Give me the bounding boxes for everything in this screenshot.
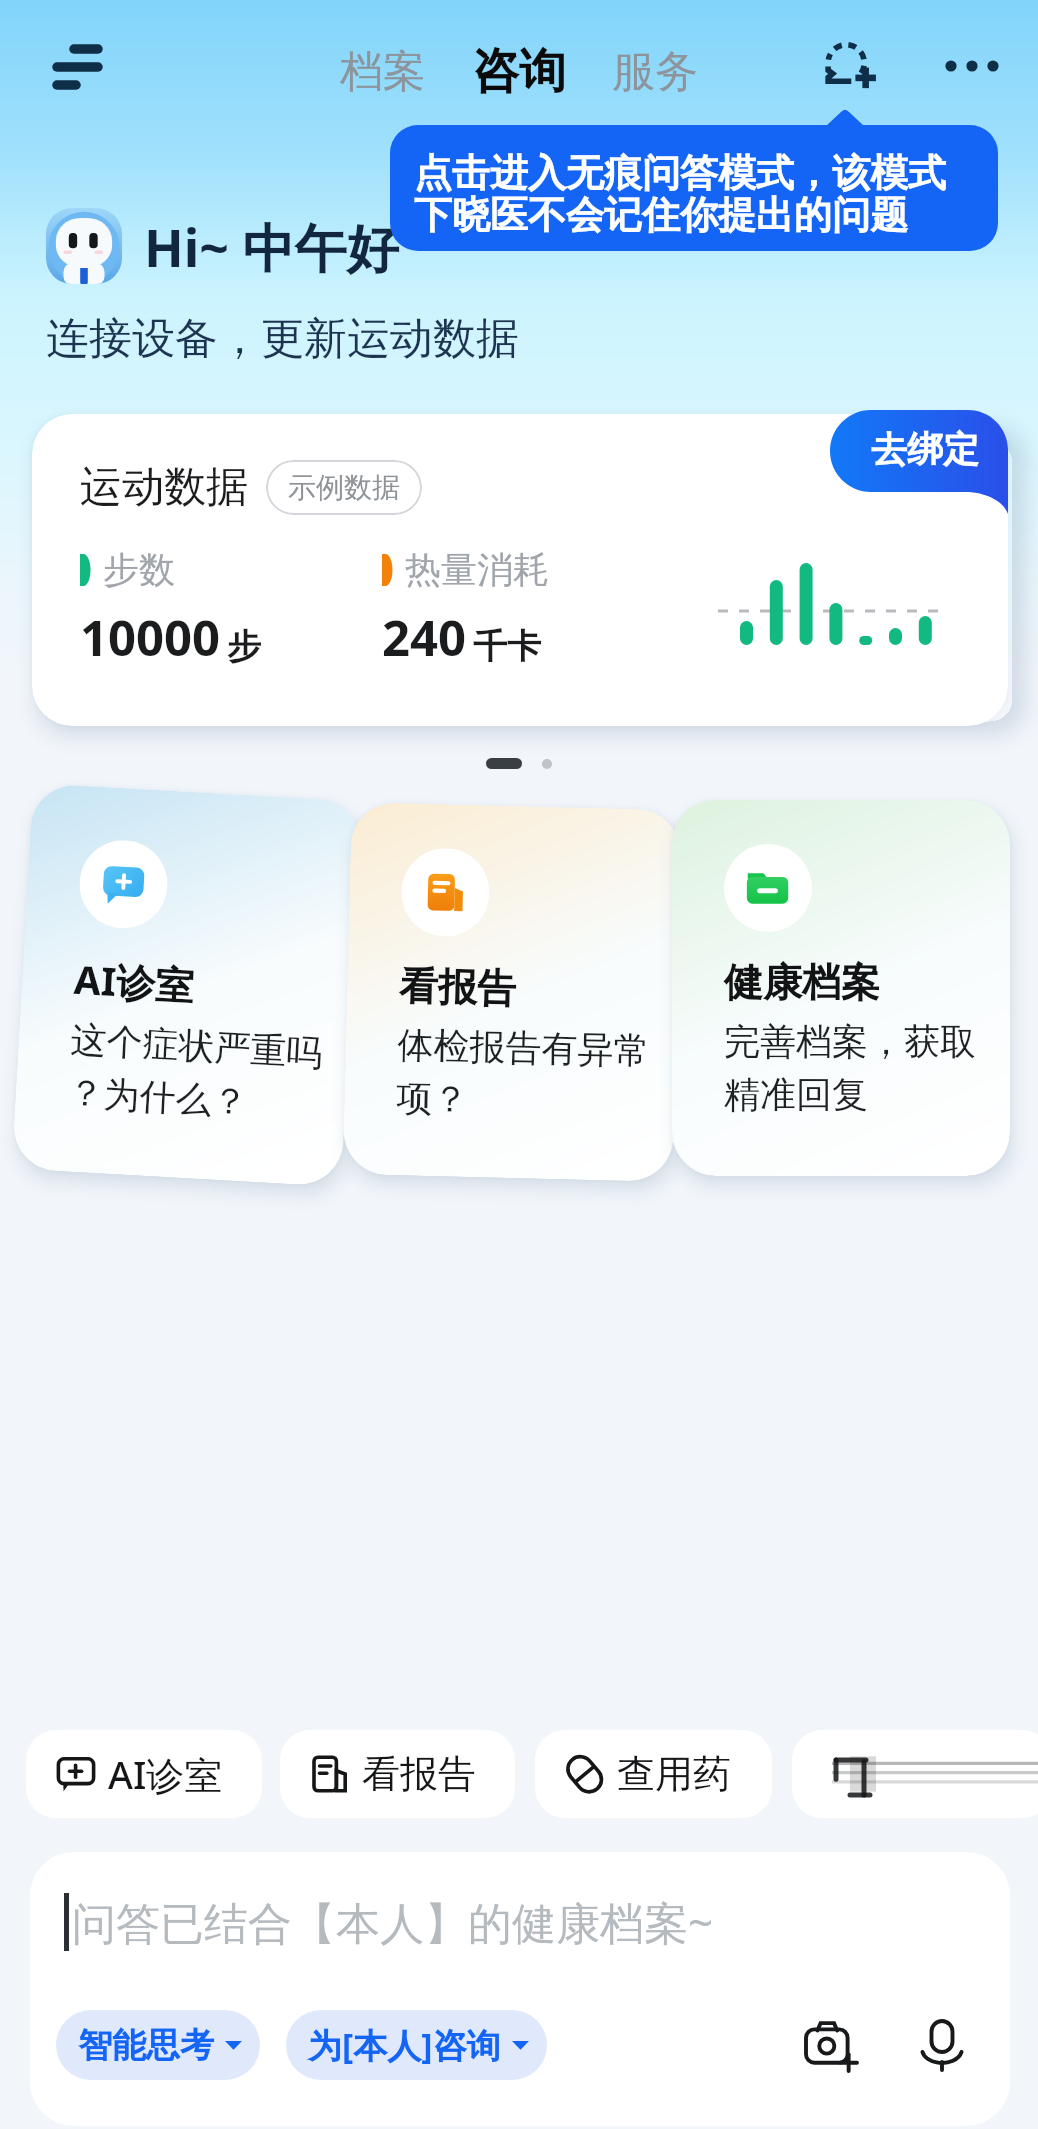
staticText: AI诊室 (73, 952, 196, 1011)
button[interactable]: 运动数据 (32, 414, 1008, 726)
button[interactable]: 健康档案 (672, 800, 1010, 1176)
staticText: 步 (227, 625, 261, 668)
button[interactable]: New incognito chat (812, 28, 888, 104)
staticText: 示例数据 (288, 470, 400, 505)
staticText: 体检报告有异常 项？ (396, 1022, 654, 1127)
button[interactable]: 咨询 (466, 34, 572, 109)
button[interactable]: 点击进入无痕问答模式，该模式 下晓医不会记住你提出的问题 (390, 125, 998, 251)
button[interactable]: Menu (40, 30, 112, 102)
staticText: 连接设备，更新运动数据 (46, 312, 519, 366)
button[interactable]: 看报告 (342, 802, 681, 1182)
staticText: 热量消耗 (405, 547, 549, 592)
button[interactable]: 服务 (606, 37, 704, 107)
staticText: 千卡 (473, 625, 541, 668)
button[interactable]: 档案 (334, 37, 432, 107)
button[interactable]: 为[本人]咨询 (286, 2010, 547, 2080)
button[interactable] (830, 410, 1008, 522)
staticText: 服务 (612, 45, 698, 99)
button[interactable]: Check illness (792, 1730, 1038, 1818)
staticText: 健康档案 (724, 958, 880, 1007)
staticText: 步数 (103, 547, 175, 592)
staticText: 240 (382, 604, 467, 671)
staticText: 为[本人]咨询 (308, 2022, 501, 2068)
staticText: 去绑定 (871, 427, 979, 472)
button[interactable]: 查用药 (535, 1730, 772, 1818)
button[interactable]: AI诊室 (26, 1730, 262, 1818)
staticText: 看报告 (398, 961, 517, 1013)
staticText: 这个症状严重吗 ？为什么？ (66, 1017, 350, 1131)
button[interactable]: 看报告 (280, 1730, 515, 1818)
button[interactable]: Voice input (906, 2009, 978, 2081)
staticText: AI诊室 (108, 1748, 223, 1800)
staticText: 咨询 (472, 42, 566, 101)
button[interactable]: 智能思考 (56, 2010, 260, 2080)
staticText: 运动数据 (80, 461, 248, 514)
button[interactable]: Assistant avatar (46, 208, 122, 284)
staticText: Hi~ 中午好 (144, 211, 399, 282)
staticText: 问答已结合【本人】的健康档案~ (72, 1892, 714, 1952)
staticText: 完善档案，获取 精准回复 (724, 1019, 988, 1118)
staticText: 智能思考 (78, 2024, 214, 2067)
staticText: 点击进入无痕问答模式，该模式 下晓医不会记住你提出的问题 (414, 149, 946, 239)
staticText: 看报告 (362, 1750, 476, 1798)
button[interactable]: AI诊室 (11, 783, 362, 1187)
staticText: 查用药 (617, 1750, 731, 1798)
staticText: 档案 (340, 45, 426, 99)
button[interactable]: More options (934, 28, 1010, 104)
staticText: 10000 (80, 604, 221, 671)
button[interactable]: Camera (796, 2009, 868, 2081)
button[interactable]: Ask a question (56, 1892, 980, 1952)
